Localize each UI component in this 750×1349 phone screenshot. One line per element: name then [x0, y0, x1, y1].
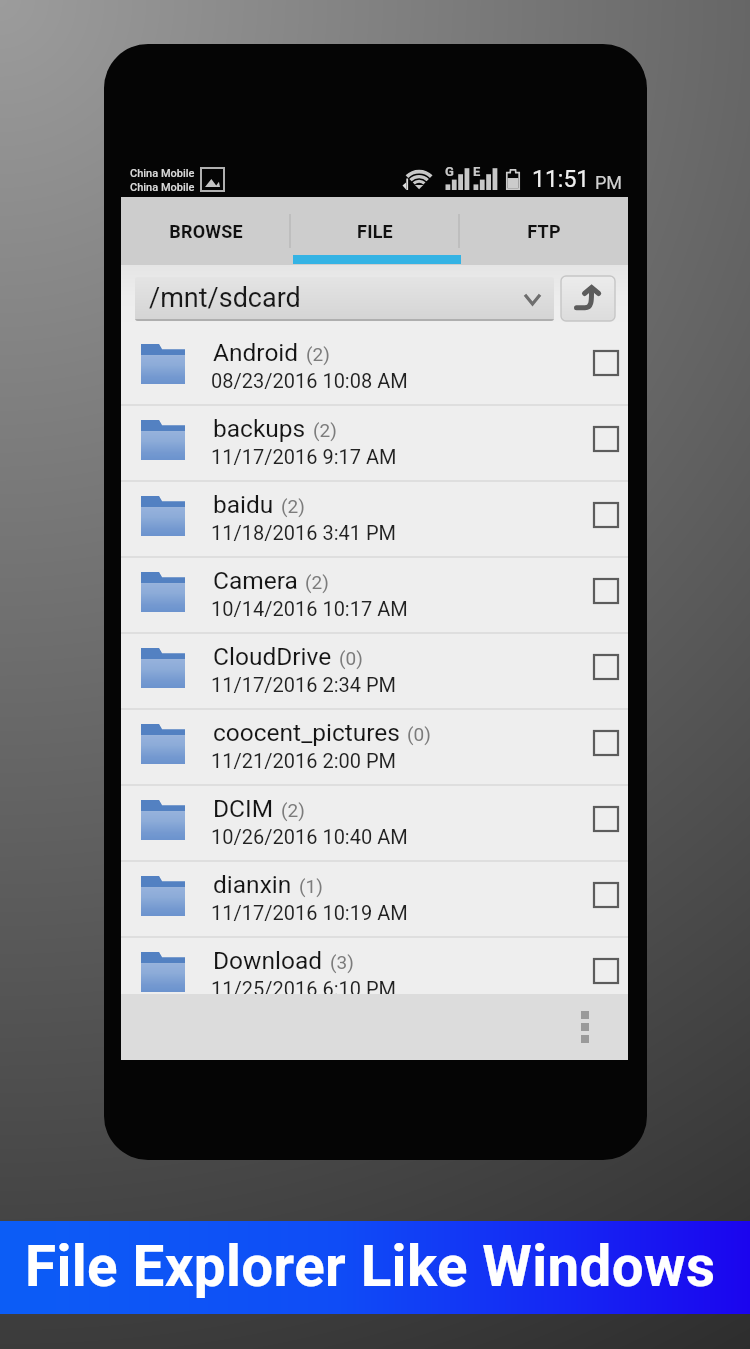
button[interactable]: Android [121, 330, 628, 406]
staticText: 11/21/2016 2:00 PM [211, 749, 396, 772]
button[interactable]: baidu [121, 482, 628, 558]
button[interactable]: coocent_pictures [121, 710, 628, 786]
staticText: DCIM [213, 794, 274, 823]
staticText: (1) [299, 875, 323, 897]
staticText: (0) [339, 647, 363, 669]
staticText: (3) [330, 951, 354, 973]
staticText: (2) [306, 343, 330, 365]
staticText: 11:51 [532, 166, 590, 193]
button[interactable]: Select DCIM [586, 799, 626, 839]
staticText: 11/25/2016 6:10 PM [211, 977, 396, 1000]
button[interactable]: Download [121, 938, 628, 1014]
staticText: 10/14/2016 10:17 AM [211, 597, 408, 620]
button[interactable]: /mnt/sdcard [135, 277, 554, 321]
staticText: (2) [281, 799, 305, 821]
staticText: (2) [313, 419, 337, 441]
staticText: dianxin [213, 870, 292, 899]
button[interactable]: FILE [290, 197, 459, 265]
staticText: 08/23/2016 10:08 AM [211, 369, 408, 392]
staticText: 11/18/2016 3:41 PM [211, 521, 396, 544]
staticText: 11/17/2016 10:19 AM [211, 901, 408, 924]
staticText: E [473, 164, 481, 179]
staticText: 11/17/2016 2:34 PM [211, 673, 396, 696]
staticText: G [445, 164, 454, 179]
staticText: BROWSE [169, 221, 243, 242]
staticText: 11/17/2016 9:17 AM [211, 445, 397, 468]
staticText: /mnt/sdcard [149, 282, 301, 314]
staticText: FTP [527, 221, 561, 242]
button[interactable]: dianxin [121, 862, 628, 938]
staticText: coocent_pictures [213, 718, 400, 747]
button[interactable]: Select coocent_pictures [586, 723, 626, 763]
button[interactable]: Select Android [586, 343, 626, 383]
staticText: baidu [213, 490, 274, 519]
button[interactable]: backups [121, 406, 628, 482]
button[interactable]: CloudDrive [121, 634, 628, 710]
button[interactable]: Select baidu [586, 495, 626, 535]
staticText: (2) [281, 495, 305, 517]
button[interactable]: Up one level [561, 276, 615, 321]
button[interactable]: Select CloudDrive [586, 647, 626, 687]
button[interactable]: DCIM [121, 786, 628, 862]
button[interactable]: Camera [121, 558, 628, 634]
staticText: File Explorer Like Windows [25, 1234, 716, 1300]
staticText: (0) [407, 723, 431, 745]
staticText: PM [595, 172, 623, 193]
button[interactable]: More options [570, 1007, 600, 1047]
staticText: 10/26/2016 10:40 AM [211, 825, 408, 848]
staticText: China Mobile China Mobile [130, 167, 195, 193]
staticText: Camera [213, 566, 298, 595]
button[interactable]: Select Camera [586, 571, 626, 611]
button[interactable]: FTP [459, 197, 628, 265]
staticText: (2) [305, 571, 329, 593]
button[interactable]: Select backups [586, 419, 626, 459]
staticText: Download [213, 946, 323, 975]
staticText: backups [213, 414, 306, 443]
button[interactable]: Select Download [586, 951, 626, 991]
button[interactable]: Select dianxin [586, 875, 626, 915]
staticText: CloudDrive [213, 642, 332, 671]
button[interactable]: BROWSE [121, 197, 290, 265]
staticText: FILE [357, 221, 393, 242]
staticText: Android [213, 338, 299, 367]
